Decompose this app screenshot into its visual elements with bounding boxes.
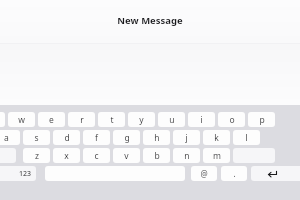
staticText: y bbox=[139, 114, 144, 126]
button[interactable]: g bbox=[113, 130, 140, 145]
button[interactable]: Return bbox=[251, 166, 300, 181]
staticText: f bbox=[95, 132, 98, 144]
button[interactable]: x bbox=[53, 148, 80, 163]
button[interactable]: p bbox=[248, 112, 275, 127]
staticText: r bbox=[80, 114, 84, 126]
staticText: d bbox=[64, 132, 70, 144]
staticText: w bbox=[18, 114, 25, 126]
staticText: c bbox=[94, 150, 99, 162]
staticText: u bbox=[169, 114, 175, 126]
staticText: a bbox=[4, 132, 9, 144]
staticText: e bbox=[49, 114, 54, 126]
staticText: o bbox=[229, 114, 235, 126]
staticText: New Message bbox=[117, 14, 183, 27]
staticText: m bbox=[213, 150, 221, 162]
staticText: t bbox=[110, 114, 114, 126]
button[interactable]: d bbox=[53, 130, 80, 145]
button[interactable]: f bbox=[83, 130, 110, 145]
button[interactable]: l bbox=[233, 130, 260, 145]
staticText: l bbox=[245, 132, 248, 144]
button[interactable]: a bbox=[0, 130, 20, 145]
button[interactable]: m bbox=[203, 148, 230, 163]
button[interactable]: j bbox=[173, 130, 200, 145]
button[interactable]: e bbox=[38, 112, 65, 127]
button[interactable]: v bbox=[113, 148, 140, 163]
button[interactable]: k bbox=[203, 130, 230, 145]
button[interactable]: h bbox=[143, 130, 170, 145]
button[interactable]: 123 bbox=[0, 166, 36, 181]
button[interactable]: t bbox=[98, 112, 125, 127]
staticText: p bbox=[259, 114, 265, 126]
button[interactable]: z bbox=[23, 148, 50, 163]
button[interactable]: o bbox=[218, 112, 245, 127]
staticText: 123 bbox=[19, 169, 32, 179]
button[interactable]: @ bbox=[191, 166, 217, 181]
button[interactable]: y bbox=[128, 112, 155, 127]
staticText: k bbox=[214, 132, 219, 144]
button[interactable]: u bbox=[158, 112, 185, 127]
button[interactable]: . bbox=[221, 166, 247, 181]
staticText: b bbox=[154, 150, 160, 162]
button[interactable]: q bbox=[0, 112, 5, 127]
staticText: . bbox=[233, 168, 236, 179]
button[interactable]: w bbox=[8, 112, 35, 127]
staticText: x bbox=[64, 150, 69, 162]
button[interactable]: r bbox=[68, 112, 95, 127]
staticText: @ bbox=[200, 168, 208, 179]
staticText: v bbox=[124, 150, 129, 162]
staticText: n bbox=[184, 150, 190, 162]
staticText: s bbox=[34, 132, 39, 144]
staticText: i bbox=[200, 114, 203, 126]
button[interactable]: b bbox=[143, 148, 170, 163]
button[interactable]: s bbox=[23, 130, 50, 145]
staticText: g bbox=[124, 132, 130, 144]
button[interactable]: i bbox=[188, 112, 215, 127]
staticText: h bbox=[154, 132, 160, 144]
staticText: j bbox=[185, 132, 188, 144]
button[interactable]: c bbox=[83, 148, 110, 163]
staticText: z bbox=[35, 150, 39, 162]
button[interactable]: n bbox=[173, 148, 200, 163]
